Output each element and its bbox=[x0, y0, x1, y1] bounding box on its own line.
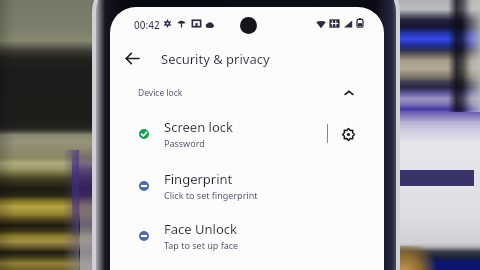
staticText: Face Unlock bbox=[164, 220, 237, 238]
staticText: Security & privacy bbox=[161, 50, 270, 68]
staticText: Screen lock bbox=[164, 118, 233, 136]
staticText: Password bbox=[164, 137, 205, 149]
button[interactable]: Back bbox=[120, 46, 144, 70]
staticText: 00:42 bbox=[134, 18, 160, 32]
staticText: Device lock bbox=[138, 87, 183, 99]
button[interactable]: Face Unlock bbox=[110, 211, 384, 260]
button[interactable]: Screen lock bbox=[110, 109, 384, 158]
staticText: Fingerprint bbox=[164, 170, 233, 188]
staticText: Click to set fingerprint bbox=[164, 189, 258, 201]
button[interactable]: Device lock bbox=[110, 82, 384, 104]
staticText: Tap to set up face bbox=[164, 239, 239, 251]
button[interactable]: Fingerprint bbox=[110, 161, 384, 210]
button[interactable]: Screen lock settings bbox=[337, 123, 359, 145]
